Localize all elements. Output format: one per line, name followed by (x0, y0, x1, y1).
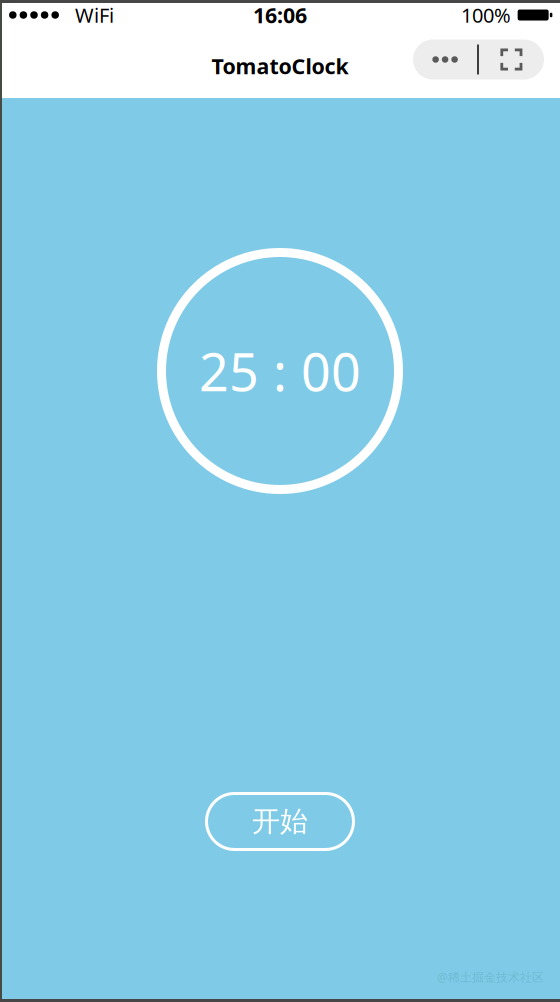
staticText: TomatoClock (211, 52, 348, 80)
staticText: 开始 (252, 804, 308, 839)
button[interactable]: 开始 (205, 792, 355, 851)
button[interactable]: More options and close mini program (413, 39, 544, 79)
staticText: @稀土掘金技术社区 (437, 969, 544, 985)
staticText: 100% (461, 2, 511, 28)
staticText: WiFi (75, 2, 114, 28)
staticText: 16:06 (253, 1, 307, 29)
staticText: 25 : 00 (199, 336, 361, 406)
